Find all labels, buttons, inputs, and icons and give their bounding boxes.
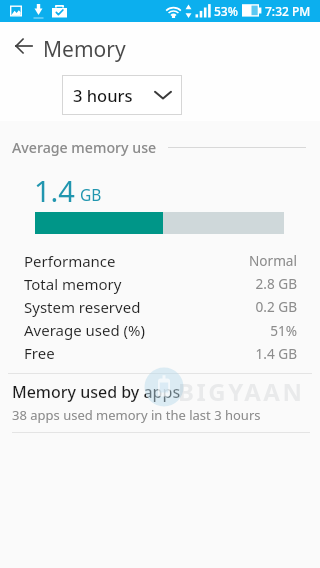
staticText: Free	[24, 343, 55, 363]
button[interactable]: Back	[0, 22, 48, 70]
staticText: Performance	[24, 251, 116, 271]
staticText: System reserved	[24, 297, 141, 317]
staticText: 1.4 GB	[197, 344, 297, 363]
staticText: Total memory	[24, 274, 122, 294]
staticText: Normal	[197, 251, 297, 270]
staticText: 2.8 GB	[197, 274, 297, 293]
staticText: GB	[80, 184, 102, 205]
staticText: 3 hours	[73, 84, 133, 106]
staticText: 7:32 PM	[265, 3, 320, 19]
staticText: Average memory use	[12, 138, 157, 157]
button[interactable]: 3 hours	[62, 75, 182, 115]
staticText: 1.4	[34, 171, 75, 210]
staticText: Memory used by apps	[12, 381, 181, 403]
staticText: 0.2 GB	[197, 297, 297, 316]
staticText: 38 apps used memory in the last 3 hours	[12, 406, 261, 424]
button[interactable]: Memory used by apps	[0, 374, 320, 432]
staticText: BIGYAAN	[178, 375, 305, 408]
staticText: 53%	[214, 3, 254, 19]
staticText: Memory	[43, 35, 126, 64]
staticText: Average used (%)	[24, 320, 146, 340]
staticText: 51%	[197, 321, 297, 340]
